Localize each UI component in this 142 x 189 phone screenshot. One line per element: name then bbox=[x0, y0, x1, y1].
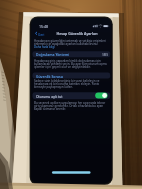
staticText: Oturumu açık tut bbox=[36, 94, 86, 98]
staticText: 15:48 bbox=[39, 24, 51, 29]
staticText: Sadece sizin bilebileceğiniz bir yanıt b… bbox=[34, 79, 108, 89]
staticText: Bu seçenek açıkken uygulamayı her açışın… bbox=[34, 101, 108, 111]
button[interactable]: Doğrulama Yöntemi bbox=[33, 51, 111, 57]
staticText: Hesap Güvenlik Ayarları bbox=[52, 31, 102, 36]
button[interactable]: Güvenlik Sorusu bbox=[33, 73, 111, 79]
button[interactable]: Back bbox=[34, 31, 47, 36]
staticText: Daha fazla bilgi bbox=[34, 45, 74, 49]
staticText: Hesabınıza giriş yaparken kimlik doğrula… bbox=[34, 59, 108, 69]
button[interactable]: Oturumu açık tut bbox=[33, 92, 111, 99]
staticText: Güvenlik Sorusu bbox=[36, 74, 86, 79]
staticText: Doğrulama Yöntemi bbox=[36, 52, 86, 57]
staticText: Hesabınızın güvenliğini artırmak ve yetk… bbox=[34, 39, 109, 46]
staticText: Geri bbox=[38, 32, 49, 36]
staticText: SMS bbox=[93, 53, 108, 57]
